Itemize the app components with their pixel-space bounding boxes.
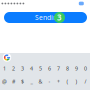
- staticText: 6: [48, 65, 51, 72]
- button[interactable]: 8: [63, 62, 72, 75]
- button[interactable]: @: [0, 75, 9, 88]
- staticText: 4: [30, 65, 33, 72]
- button[interactable]: 0: [81, 62, 90, 75]
- staticText: _: [30, 78, 32, 85]
- staticText: 7: [57, 65, 60, 72]
- staticText: +: [57, 78, 60, 85]
- button[interactable]: 5: [36, 62, 45, 75]
- button[interactable]: (: [63, 75, 72, 88]
- staticText: 3: [57, 12, 62, 23]
- staticText: 3: [21, 65, 24, 72]
- button[interactable]: _: [27, 75, 36, 88]
- staticText: $: [21, 78, 24, 85]
- button[interactable]: Sending: [3, 12, 87, 23]
- button[interactable]: Gboard settings: [2, 52, 12, 62]
- staticText: Sending: [35, 13, 61, 22]
- staticText: -: [48, 78, 50, 85]
- button[interactable]: 4: [27, 62, 36, 75]
- button[interactable]: ): [72, 75, 81, 88]
- button[interactable]: 1: [0, 62, 9, 75]
- staticText: 5: [39, 65, 42, 72]
- staticText: /: [84, 78, 86, 85]
- button[interactable]: +: [54, 75, 63, 88]
- staticText: 2: [12, 65, 15, 72]
- staticText: @: [2, 78, 7, 85]
- staticText: ): [75, 78, 77, 85]
- button[interactable]: 7: [54, 62, 63, 75]
- staticText: (: [66, 78, 68, 85]
- button[interactable]: /: [81, 75, 90, 88]
- button[interactable]: 9: [72, 62, 81, 75]
- staticText: #: [12, 78, 15, 85]
- button[interactable]: #: [9, 75, 18, 88]
- staticText: 1: [3, 65, 6, 72]
- button[interactable]: 2: [9, 62, 18, 75]
- staticText: 9: [75, 65, 78, 72]
- button[interactable]: 3: [18, 62, 27, 75]
- staticText: &: [38, 78, 42, 85]
- staticText: 8: [66, 65, 69, 72]
- button[interactable]: 6: [45, 62, 54, 75]
- button[interactable]: $: [18, 75, 27, 88]
- button[interactable]: &: [36, 75, 45, 88]
- button[interactable]: -: [45, 75, 54, 88]
- staticText: 0: [84, 65, 87, 72]
